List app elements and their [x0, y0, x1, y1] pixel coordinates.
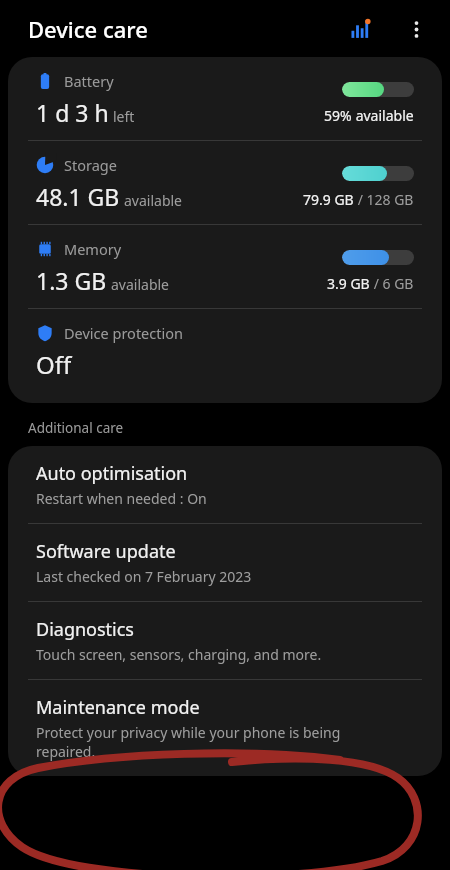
button[interactable]: Usage statistics	[342, 11, 378, 47]
staticText: Protect your privacy while your phone is…	[36, 723, 386, 761]
staticText: / 6 GB	[370, 274, 414, 293]
button[interactable]: Memory	[8, 225, 442, 308]
staticText: Storage	[64, 155, 117, 175]
staticText: 3.9 GB	[327, 274, 370, 293]
staticText: Restart when needed : On	[36, 489, 207, 508]
staticText: Diagnostics	[36, 617, 134, 642]
staticText: / 128 GB	[354, 190, 414, 209]
staticText: Maintenance mode	[36, 695, 200, 720]
staticText: Auto optimisation	[36, 461, 188, 486]
button[interactable]: More options	[396, 9, 436, 49]
staticText: Battery	[64, 71, 114, 91]
staticText: 1.3 GB	[36, 265, 107, 296]
staticText: Off	[36, 348, 72, 381]
staticText: available	[124, 191, 183, 210]
button[interactable]: Storage	[8, 141, 442, 224]
staticText: left	[113, 107, 135, 126]
staticText: available	[352, 106, 414, 125]
staticText: 79.9 GB	[303, 190, 354, 209]
staticText: Last checked on 7 February 2023	[36, 567, 252, 586]
staticText: 1 d 3 h	[36, 97, 109, 128]
button[interactable]: Diagnostics	[8, 602, 442, 679]
staticText: Touch screen, sensors, charging, and mor…	[36, 645, 322, 664]
button[interactable]: Auto optimisation	[8, 446, 442, 523]
staticText: Memory	[64, 239, 122, 259]
button[interactable]: Device protection	[8, 309, 442, 403]
button[interactable]: Battery	[8, 57, 442, 140]
button[interactable]: Software update	[8, 524, 442, 601]
button[interactable]: Maintenance mode	[8, 680, 442, 776]
staticText: 48.1 GB	[36, 181, 120, 212]
staticText: available	[111, 275, 170, 294]
staticText: Additional care	[28, 419, 124, 437]
staticText: Device care	[28, 14, 148, 44]
staticText: 59%	[324, 106, 352, 125]
staticText: Software update	[36, 539, 176, 564]
staticText: Device protection	[64, 323, 183, 343]
